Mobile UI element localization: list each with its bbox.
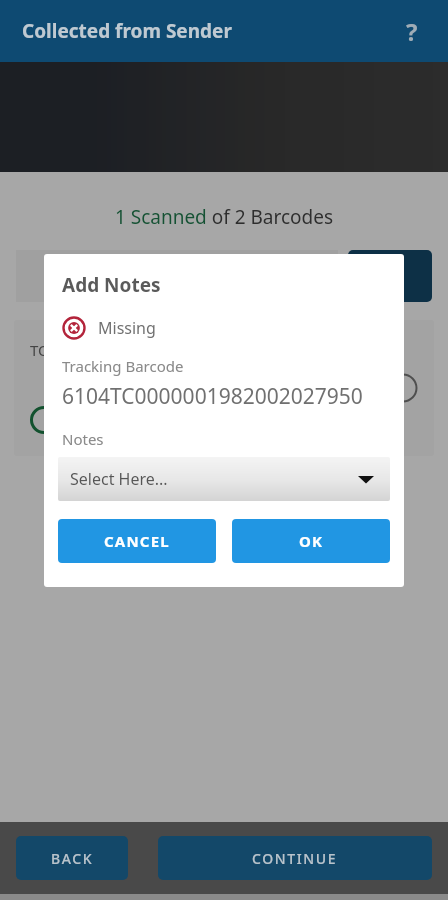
staticText: CANCEL [104, 531, 170, 551]
staticText: OK [299, 531, 324, 551]
staticText: Tracking Barcode [62, 356, 184, 376]
staticText: Missing [98, 317, 156, 339]
staticText: Collected from Sender [22, 18, 232, 44]
staticText: TO [30, 340, 50, 360]
button[interactable]: Select Here... [58, 457, 390, 501]
button[interactable]: OK [232, 519, 390, 563]
button[interactable]: BACK [16, 836, 128, 880]
staticText: Add Notes [62, 272, 161, 298]
staticText: 6104TC0000001982002027950 [62, 382, 390, 411]
button[interactable]: CONTINUE [158, 836, 432, 880]
staticText: BACK [51, 849, 94, 868]
staticText: CONTINUE [252, 849, 338, 868]
staticText: Select Here... [70, 468, 168, 490]
button[interactable]: Help [390, 9, 434, 53]
button[interactable]: CANCEL [58, 519, 216, 563]
staticText: ? [406, 15, 418, 48]
staticText: 1 Scanned of 2 Barcodes [0, 204, 448, 230]
staticText: Notes [62, 429, 104, 449]
